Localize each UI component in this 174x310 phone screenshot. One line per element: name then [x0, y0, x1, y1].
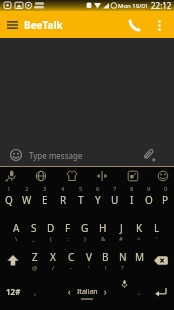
button[interactable] — [142, 148, 156, 162]
button[interactable]: N — [114, 245, 131, 276]
button[interactable]: L — [148, 216, 166, 247]
staticText: ' — [156, 235, 158, 243]
staticText: # — [119, 235, 123, 243]
staticText: L — [154, 221, 160, 235]
staticText: P — [162, 193, 169, 207]
staticText: J — [120, 221, 123, 235]
staticText: 5 — [79, 185, 83, 193]
button[interactable]: ‹ — [44, 276, 130, 307]
button[interactable]: 4 — [54, 185, 72, 216]
button[interactable] — [0, 13, 24, 37]
button[interactable]: M — [131, 245, 148, 276]
staticText: 0 — [164, 185, 168, 193]
staticText: U — [111, 193, 119, 207]
staticText: N — [119, 250, 127, 264]
button[interactable]: V — [80, 245, 97, 276]
staticText: T — [78, 193, 84, 207]
button[interactable] — [148, 245, 174, 276]
staticText: : — [67, 235, 69, 243]
staticText: 22:12 — [151, 0, 172, 11]
button[interactable]: . — [130, 276, 148, 307]
staticText: Y — [95, 193, 101, 207]
button[interactable]: 5 — [72, 185, 89, 216]
button[interactable]: C — [62, 245, 80, 276]
button[interactable]: G — [76, 216, 94, 247]
staticText: ) — [84, 235, 86, 243]
staticText: F — [65, 221, 71, 235]
button[interactable] — [150, 16, 168, 34]
staticText: V — [86, 250, 92, 264]
button[interactable]: X — [44, 245, 62, 276]
button[interactable] — [0, 245, 26, 276]
button[interactable]: 1 — [0, 185, 18, 216]
button[interactable]: Z — [26, 245, 44, 276]
button[interactable] — [34, 169, 48, 183]
staticText: ( — [50, 235, 52, 243]
button[interactable]: K — [130, 216, 148, 247]
button[interactable] — [65, 169, 79, 183]
staticText: ^ — [137, 235, 141, 243]
staticText: W — [22, 193, 32, 207]
button[interactable]: S — [25, 216, 42, 247]
button[interactable] — [148, 276, 174, 307]
staticText: ‹ — [68, 286, 71, 297]
button[interactable]: 0 — [157, 185, 174, 216]
staticText: & — [101, 235, 106, 243]
staticText: ! — [105, 264, 107, 272]
button[interactable]: H — [94, 216, 112, 247]
staticText: R — [60, 193, 67, 207]
staticText: I — [130, 193, 134, 207]
staticText: Z — [32, 250, 38, 264]
staticText: . — [138, 286, 141, 297]
staticText: K — [136, 221, 143, 235]
staticText: Q — [5, 193, 13, 207]
button[interactable]: 3 — [36, 185, 54, 216]
button[interactable]: B — [97, 245, 114, 276]
button[interactable]: 2 — [18, 185, 36, 216]
staticText: Mon 19/01 — [118, 2, 149, 10]
staticText: G — [81, 221, 89, 235]
staticText: B — [102, 250, 109, 264]
staticText: 12# — [6, 286, 21, 297]
staticText: ' — [88, 264, 90, 272]
staticText: 2 — [25, 185, 29, 193]
staticText: M — [135, 250, 145, 264]
button[interactable]: 9 — [140, 185, 157, 216]
staticText: 3 — [43, 185, 47, 193]
button[interactable]: 8 — [123, 185, 140, 216]
staticText: 8 — [130, 185, 134, 193]
button[interactable]: 12# — [0, 276, 26, 307]
button[interactable] — [126, 169, 140, 183]
button[interactable]: Type message — [0, 144, 174, 166]
button[interactable]: , — [26, 276, 44, 307]
staticText: › — [104, 286, 107, 297]
button[interactable]: F — [59, 216, 76, 247]
staticText: 9 — [147, 185, 151, 193]
staticText: 1 — [7, 185, 11, 193]
staticText: ? — [121, 264, 124, 272]
button[interactable]: J — [112, 216, 130, 247]
staticText: D — [47, 221, 55, 235]
staticText: S — [31, 221, 37, 235]
button[interactable] — [4, 169, 18, 183]
staticText: BeeTalk — [24, 18, 63, 32]
button[interactable]: A — [8, 216, 25, 247]
button[interactable] — [156, 169, 170, 183]
button[interactable]: D — [42, 216, 59, 247]
staticText: - — [70, 264, 72, 272]
staticText: E — [42, 193, 48, 207]
staticText: 7 — [113, 185, 117, 193]
staticText: \ — [15, 235, 18, 243]
staticText: C — [68, 250, 75, 264]
button[interactable]: 7 — [106, 185, 123, 216]
staticText: _ — [32, 235, 35, 243]
staticText: H — [99, 221, 107, 235]
staticText: @ — [32, 264, 38, 272]
staticText: X — [50, 250, 56, 264]
staticText: / — [52, 264, 55, 272]
staticText: O — [145, 193, 153, 207]
button[interactable] — [124, 14, 146, 36]
button[interactable]: 6 — [89, 185, 106, 216]
button[interactable] — [95, 169, 109, 183]
staticText: 4 — [61, 185, 65, 193]
